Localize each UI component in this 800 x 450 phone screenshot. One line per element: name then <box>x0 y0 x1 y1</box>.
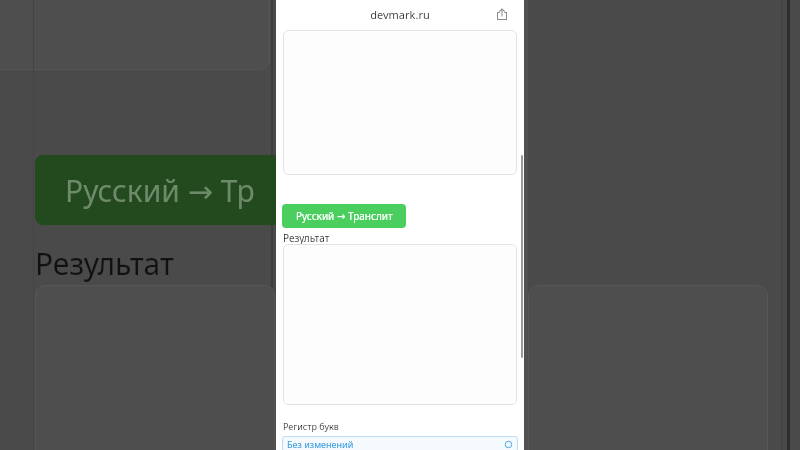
button[interactable]: Без изменений <box>282 436 518 450</box>
button[interactable]: Русский → Тр <box>35 155 335 225</box>
button[interactable] <box>283 244 517 405</box>
button[interactable] <box>283 30 517 175</box>
staticText: Результат <box>283 231 330 245</box>
staticText: Русский → Транслит <box>296 209 393 223</box>
staticText: devmark.ru <box>370 7 430 22</box>
button[interactable]: Share <box>492 4 512 24</box>
staticText: Русский → Тр <box>65 170 255 211</box>
staticText: Регистр букв <box>283 420 339 432</box>
staticText: Без изменений <box>287 438 504 450</box>
button[interactable]: Русский → Транслит <box>282 204 406 228</box>
staticText: Результат <box>35 243 174 284</box>
